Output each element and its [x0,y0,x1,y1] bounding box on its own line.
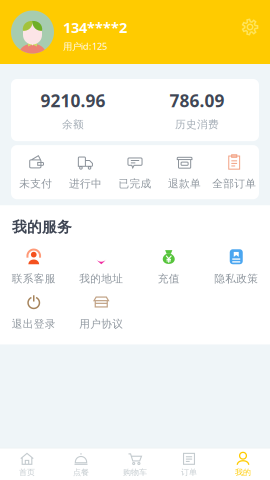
button[interactable]: 用户协议 [67,291,135,333]
staticText: 我的服务 [12,218,72,236]
staticText: 未支付 [19,177,52,190]
button[interactable]: 联系客服 [0,246,67,288]
staticText: 786.09 [169,89,224,112]
staticText: 联系客服 [12,272,56,285]
staticText: 我的地址 [79,272,123,285]
button[interactable]: 已完成 [110,145,160,199]
staticText: 全部订单 [212,177,256,190]
staticText: 9210.96 [40,89,105,112]
staticText: 隐私政策 [214,272,258,285]
staticText: 订单 [181,467,197,477]
button[interactable]: 点餐 [54,448,108,480]
staticText: 余额 [62,118,84,131]
staticText: 进行中 [69,177,102,190]
button[interactable]: 我的地址 [67,246,135,288]
staticText: 134****2 [63,18,127,37]
staticText: 已完成 [118,177,151,190]
staticText: 历史消费 [175,118,219,131]
button[interactable]: 未支付 [11,145,61,199]
staticText: 用户协议 [79,317,123,330]
button[interactable]: 充值 [135,246,202,288]
button[interactable]: 进行中 [61,145,110,199]
staticText: 点餐 [73,467,89,477]
button[interactable]: 隐私政策 [202,246,270,288]
staticText: 退款单 [168,177,201,190]
button[interactable]: 设置 [233,10,267,44]
button[interactable]: 购物车 [108,448,162,480]
staticText: 用户id:125 [63,40,107,52]
staticText: 退出登录 [12,317,56,330]
button[interactable]: 全部订单 [209,145,259,199]
button[interactable]: 订单 [162,448,216,480]
staticText: 我的 [235,467,251,477]
button[interactable]: 我的 [216,448,270,480]
button[interactable]: 退出登录 [0,291,67,333]
button[interactable]: 首页 [0,448,54,480]
staticText: 充值 [158,272,180,285]
staticText: 购物车 [123,467,147,477]
staticText: 首页 [19,467,35,477]
button[interactable]: 退款单 [160,145,209,199]
